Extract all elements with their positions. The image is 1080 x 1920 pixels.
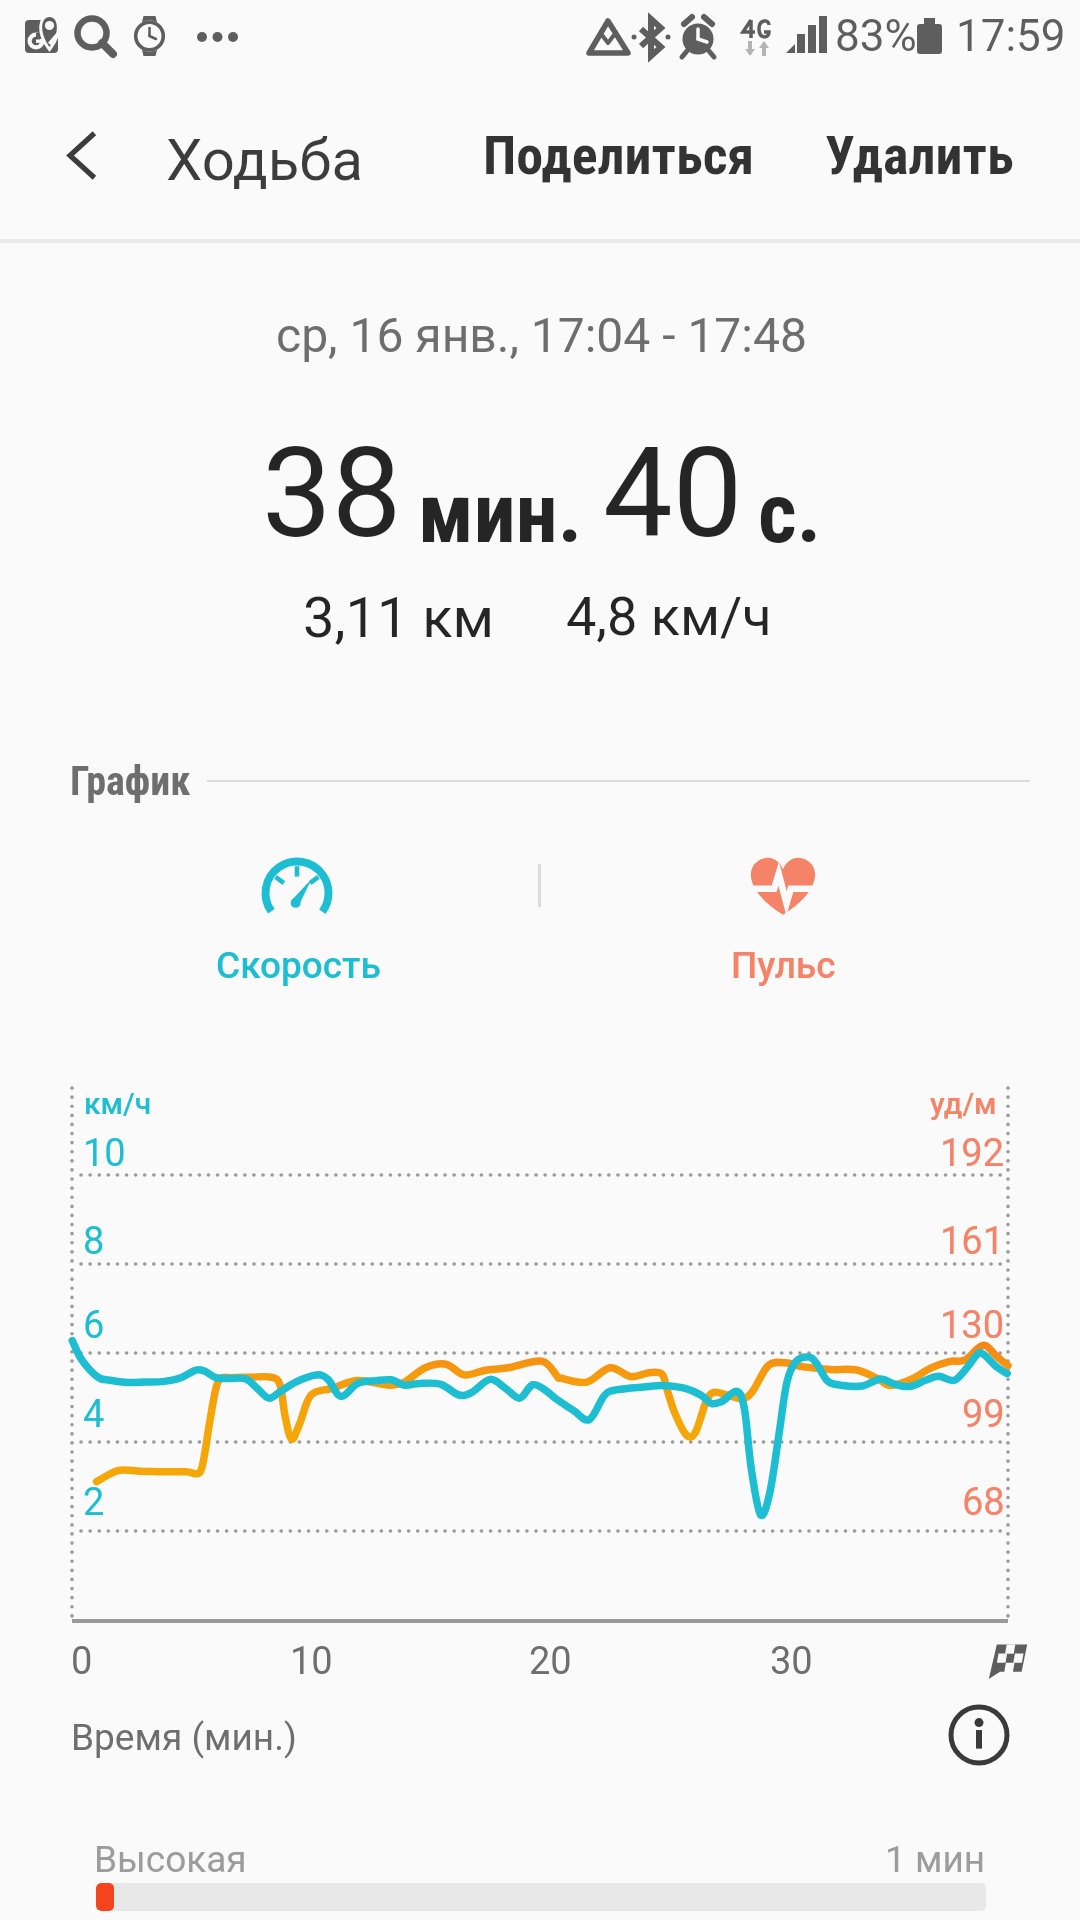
staticText: 68 [962, 1480, 1005, 1525]
staticText: Поделиться [483, 124, 755, 187]
staticText: Время (мин.) [71, 1716, 297, 1759]
staticText: 30 [770, 1639, 813, 1684]
staticText: 83% [835, 10, 917, 62]
staticText: 10 [290, 1639, 333, 1684]
staticText: Удалить [825, 124, 1014, 187]
staticText: 3,11 км [303, 585, 495, 651]
button[interactable]: Ходьба [166, 126, 363, 194]
button[interactable]: Удалить [825, 124, 1014, 187]
button[interactable]: Поделиться [483, 124, 755, 187]
staticText: км/ч [84, 1086, 152, 1121]
staticText: 130 [940, 1303, 1005, 1348]
staticText: Высокая [94, 1838, 247, 1881]
staticText: 10 [83, 1131, 126, 1176]
staticText: мин. [418, 464, 583, 562]
button[interactable]: Скорость [180, 840, 414, 998]
staticText: 192 [940, 1131, 1005, 1176]
staticText: Пульс [731, 944, 836, 987]
staticText: График [70, 758, 191, 805]
staticText: 161 [940, 1219, 1005, 1264]
staticText: Ходьба [166, 126, 363, 194]
staticText: 4,8 км/ч [566, 585, 772, 648]
staticText: ср, 16 янв., 17:04 - 17:48 [276, 307, 807, 363]
staticText: с. [758, 464, 822, 562]
staticText: 38 [262, 421, 402, 566]
staticText: Скорость [216, 944, 381, 987]
staticText: 0 [71, 1639, 93, 1684]
staticText: 17:59 [956, 10, 1066, 62]
staticText: 20 [529, 1639, 572, 1684]
staticText: 1 мин [885, 1838, 986, 1881]
staticText: уд/м [930, 1086, 997, 1121]
staticText: 2 [83, 1480, 105, 1525]
staticText: 6 [83, 1303, 105, 1348]
staticText: 40 [603, 421, 743, 566]
button[interactable]: Информация [948, 1704, 1010, 1766]
staticText: 99 [962, 1392, 1005, 1437]
button[interactable]: Пульс [668, 840, 902, 998]
staticText: 4 [83, 1392, 105, 1437]
staticText: 8 [83, 1219, 105, 1264]
button[interactable]: Назад [46, 112, 134, 200]
